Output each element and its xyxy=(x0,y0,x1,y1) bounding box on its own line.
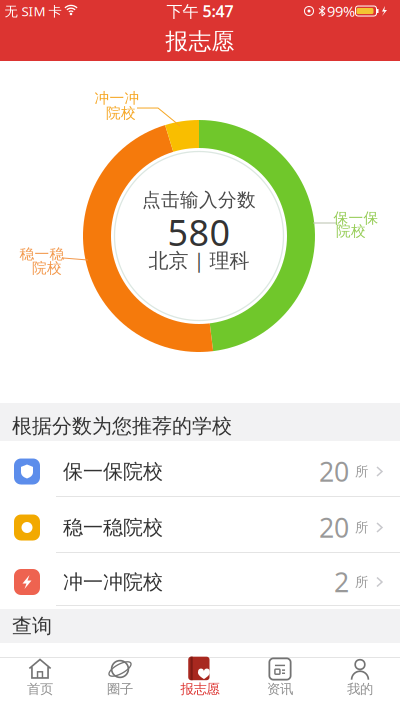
button[interactable]: 首页 xyxy=(0,657,80,706)
staticText: 点击输入分数 xyxy=(142,188,256,211)
staticText: 院校 xyxy=(336,222,366,240)
button[interactable]: 稳一稳院校 xyxy=(0,497,400,552)
staticText: 无 SIM 卡 xyxy=(4,2,61,20)
button[interactable]: 资讯 xyxy=(240,657,320,706)
staticText: 首页 xyxy=(27,681,53,697)
staticText: 资讯 xyxy=(267,681,293,697)
staticText: 99% xyxy=(327,1,355,21)
staticText: 所 xyxy=(355,463,368,480)
button[interactable]: 冲一冲院校 xyxy=(0,553,400,605)
staticText: 院校 xyxy=(32,259,62,277)
button[interactable]: 圈子 xyxy=(80,657,160,706)
staticText: 查询 xyxy=(12,614,52,638)
staticText: 我的 xyxy=(347,681,373,697)
staticText: 2 xyxy=(334,564,349,600)
button[interactable]: 保一保院校 xyxy=(0,441,400,496)
staticText: 报志愿 xyxy=(180,681,219,697)
staticText: 20 xyxy=(319,454,349,489)
staticText: 冲一冲 xyxy=(94,89,139,107)
staticText: 20 xyxy=(319,510,349,545)
staticText: 下午 5:47 xyxy=(166,0,233,22)
staticText: 报志愿 xyxy=(165,28,234,55)
button[interactable]: 我的 xyxy=(320,657,400,706)
staticText: 保一保 xyxy=(333,209,378,227)
staticText: 稳一稳 xyxy=(19,245,64,263)
staticText: 冲一冲院校 xyxy=(63,570,163,594)
button[interactable]: 报志愿 xyxy=(160,657,240,706)
staticText: 580 xyxy=(167,208,230,256)
staticText: 北京 | 理科 xyxy=(148,247,249,273)
staticText: 圈子 xyxy=(107,681,133,697)
staticText: 保一保院校 xyxy=(63,459,163,484)
staticText: 所 xyxy=(355,574,368,590)
staticText: 根据分数为您推荐的学校 xyxy=(12,414,232,438)
button[interactable]: 点击输入分数 xyxy=(112,149,286,323)
staticText: 稳一稳院校 xyxy=(63,515,163,540)
staticText: 院校 xyxy=(106,104,136,122)
staticText: 所 xyxy=(355,519,368,536)
